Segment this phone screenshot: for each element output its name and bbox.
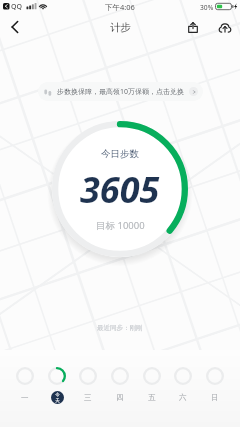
button[interactable]: 日 (204, 386, 226, 408)
staticText: 步数换保障，最高领10万保额，点击兑换 (57, 87, 185, 97)
button[interactable]: 三 (77, 386, 99, 408)
staticText: 六 (179, 393, 187, 402)
staticText: 四 (116, 393, 124, 402)
staticText: 一 (21, 393, 29, 402)
button[interactable]: 四 (109, 386, 131, 408)
staticText: 最近同步：刚刚 (97, 324, 143, 332)
button[interactable]: 一 (14, 386, 36, 408)
button[interactable]: 步数换保障，最高领10万保额，点击兑换 (38, 82, 203, 101)
staticText: 目标 10000 (96, 219, 145, 232)
button[interactable]: 今天 (46, 386, 68, 408)
button[interactable]: 分享 (183, 17, 203, 37)
staticText: 下午4:06 (105, 2, 135, 12)
staticText: 今天 (55, 392, 60, 403)
button[interactable]: 六 (172, 386, 194, 408)
staticText: 计步 (110, 21, 131, 34)
staticText: 今日步数 (101, 148, 139, 160)
staticText: 三 (84, 393, 92, 402)
staticText: 日 (211, 393, 219, 402)
staticText: QQ (11, 2, 22, 12)
staticText: 3605 (80, 165, 160, 214)
staticText: 五 (148, 393, 156, 402)
staticText: 30% (200, 3, 214, 12)
button[interactable]: 返回 (4, 16, 26, 38)
button[interactable]: 同步到云端 (215, 17, 235, 37)
button[interactable]: 五 (141, 386, 163, 408)
